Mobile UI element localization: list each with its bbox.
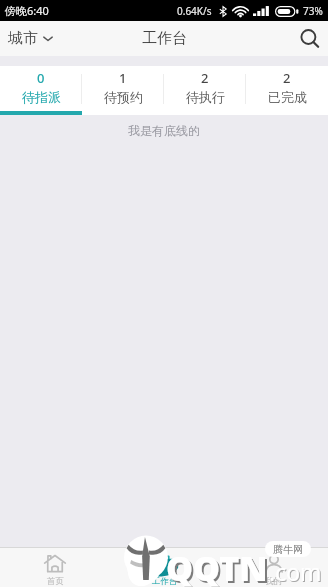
staticText: 首页 (47, 576, 64, 587)
staticText: 待预约 (104, 89, 143, 105)
staticText: 城市 (8, 29, 38, 48)
button[interactable]: 0 (0, 66, 82, 111)
staticText: 我是有底线的 (0, 123, 328, 138)
staticText: 2 (283, 69, 291, 87)
staticText: QQTN (168, 547, 270, 587)
button[interactable]: 2 (164, 66, 246, 111)
staticText: 傍晚6:40 (5, 3, 49, 18)
staticText: 我的 (265, 576, 282, 587)
staticText: 2 (201, 69, 209, 87)
button[interactable]: 首页 (0, 548, 110, 587)
button[interactable]: 城市 (0, 21, 61, 56)
staticText: 待执行 (186, 89, 225, 105)
staticText: 1 (119, 69, 127, 87)
staticText: QQTN (166, 545, 268, 587)
staticText: 待指派 (22, 89, 61, 105)
button[interactable]: Search (292, 21, 328, 56)
staticText: 腾牛网 (273, 543, 303, 556)
button[interactable]: 我的 (219, 548, 328, 587)
staticText: .com (270, 557, 323, 587)
staticText: 0.64K/s (177, 4, 212, 18)
staticText: 73% (303, 4, 323, 18)
staticText: 0 (37, 69, 45, 87)
staticText: .com (269, 556, 322, 587)
staticText: 工作台 (142, 29, 187, 48)
button[interactable]: 2 (246, 66, 328, 111)
staticText: 已完成 (268, 89, 307, 105)
button[interactable]: 工作台 (110, 548, 219, 587)
staticText: 工作台 (152, 576, 178, 587)
button[interactable]: 1 (82, 66, 164, 111)
